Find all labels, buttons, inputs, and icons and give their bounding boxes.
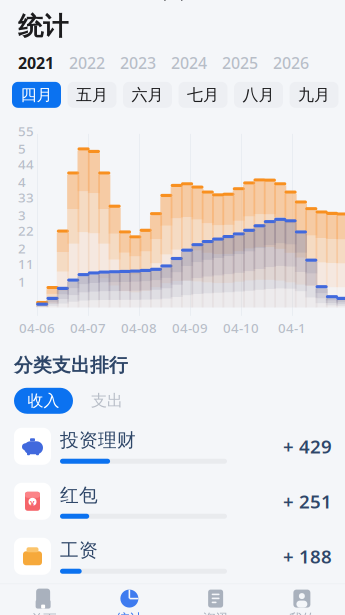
staticText: 333 [18, 188, 34, 224]
button[interactable]: 2023 [120, 52, 171, 74]
button[interactable]: 四月 [12, 82, 61, 108]
staticText: 04-08 [121, 319, 157, 337]
staticText: 六月 [131, 85, 163, 105]
button[interactable]: 五月 [67, 82, 116, 108]
staticText: 2024 [171, 52, 207, 73]
button[interactable]: 我的 [259, 584, 345, 615]
staticText: 资讯 [203, 611, 229, 615]
staticText: 分类支出排行 [14, 354, 128, 377]
button[interactable]: ¥ [0, 474, 345, 529]
staticText: 2023 [120, 52, 156, 73]
staticText: 2025 [222, 52, 258, 73]
staticText: 统计 [18, 11, 68, 42]
button[interactable]: 2022 [69, 52, 120, 74]
button[interactable]: 2026 [273, 52, 324, 74]
button[interactable]: 七月 [178, 82, 227, 108]
button[interactable]: 支出 [87, 388, 127, 414]
staticText: 04-07 [70, 319, 106, 337]
staticText: 七月 [187, 85, 219, 105]
staticText: 我的 [289, 611, 315, 615]
button[interactable]: 统计 [86, 584, 172, 615]
staticText: + 188 [283, 544, 332, 569]
staticText: 2026 [273, 52, 309, 73]
staticText: + 429 [283, 434, 332, 459]
button[interactable]: 资讯 [172, 584, 259, 615]
staticText: 工资 [60, 539, 98, 562]
staticText: 统计 [116, 611, 142, 615]
staticText: + 251 [283, 489, 332, 514]
staticText: 支出 [91, 391, 123, 411]
button[interactable]: 2025 [222, 52, 273, 74]
staticText: 首页 [30, 611, 56, 615]
staticText: 04-1 [278, 319, 306, 337]
staticText: 2022 [69, 52, 105, 73]
button[interactable]: 投资理财 [0, 419, 345, 474]
staticText: 九月 [298, 85, 330, 105]
staticText: ¥ [30, 499, 35, 509]
staticText: 投资理财 [60, 429, 136, 452]
button[interactable]: 工资 [0, 529, 345, 584]
staticText: 444 [18, 155, 34, 191]
staticText: 04-06 [19, 319, 55, 337]
button[interactable]: 2024 [171, 52, 222, 74]
button[interactable]: 首页 [0, 584, 86, 615]
staticText: 222 [18, 222, 34, 257]
staticText: 111 [18, 255, 34, 290]
staticText: 四月 [20, 85, 52, 105]
button[interactable]: 2021 [18, 52, 69, 74]
staticText: 八月 [242, 85, 274, 105]
staticText: 04-09 [172, 319, 208, 337]
staticText: 五月 [76, 85, 108, 105]
staticText: 收入 [27, 391, 59, 411]
staticText: 04-10 [223, 319, 259, 337]
button[interactable]: 收入 [14, 388, 73, 414]
staticText: 555 [18, 122, 34, 157]
staticText: 2021 [18, 52, 54, 73]
staticText: 红包 [60, 484, 98, 507]
staticText: 下午 4:03 [157, 0, 224, 3]
button[interactable]: 八月 [234, 82, 283, 108]
button[interactable]: 九月 [289, 82, 338, 108]
button[interactable]: 六月 [123, 82, 172, 108]
